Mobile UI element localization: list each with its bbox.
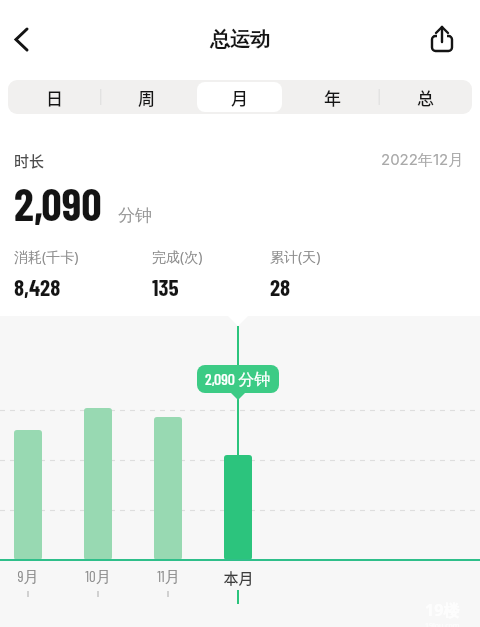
button[interactable]: 年 (286, 80, 379, 114)
staticText: 周 (138, 85, 155, 110)
staticText: 完成(次) (152, 247, 203, 266)
button[interactable] (430, 25, 454, 53)
staticText: 累计(天) (270, 247, 321, 266)
button[interactable] (8, 26, 34, 54)
staticText: 年 (324, 85, 341, 110)
button[interactable]: 月 (197, 82, 282, 112)
staticText: 总 (417, 85, 434, 110)
staticText: 月 (231, 85, 248, 110)
staticText: 28 (270, 273, 291, 301)
staticText: 本月 (223, 567, 254, 589)
staticText: 时长 (14, 150, 45, 172)
staticText: 10月 (85, 567, 111, 586)
staticText: 日 (46, 85, 63, 110)
button[interactable]: 周 (100, 80, 193, 114)
staticText: 135 (152, 273, 179, 301)
staticText: 2022年12月 (381, 150, 464, 169)
staticText: 2,090 分钟 (205, 369, 271, 390)
button[interactable]: 日 (8, 80, 100, 114)
staticText: 分钟 (118, 205, 152, 226)
staticText: 11月 (157, 567, 180, 586)
staticText: 消耗(千卡) (14, 247, 79, 266)
staticText: 总运动 (210, 27, 270, 52)
staticText: 2,090 (14, 176, 102, 230)
button[interactable]: 2,090 分钟 (197, 365, 279, 393)
button[interactable]: 总 (379, 80, 472, 114)
staticText: 9月 (17, 567, 39, 586)
staticText: 8,428 (14, 273, 61, 301)
